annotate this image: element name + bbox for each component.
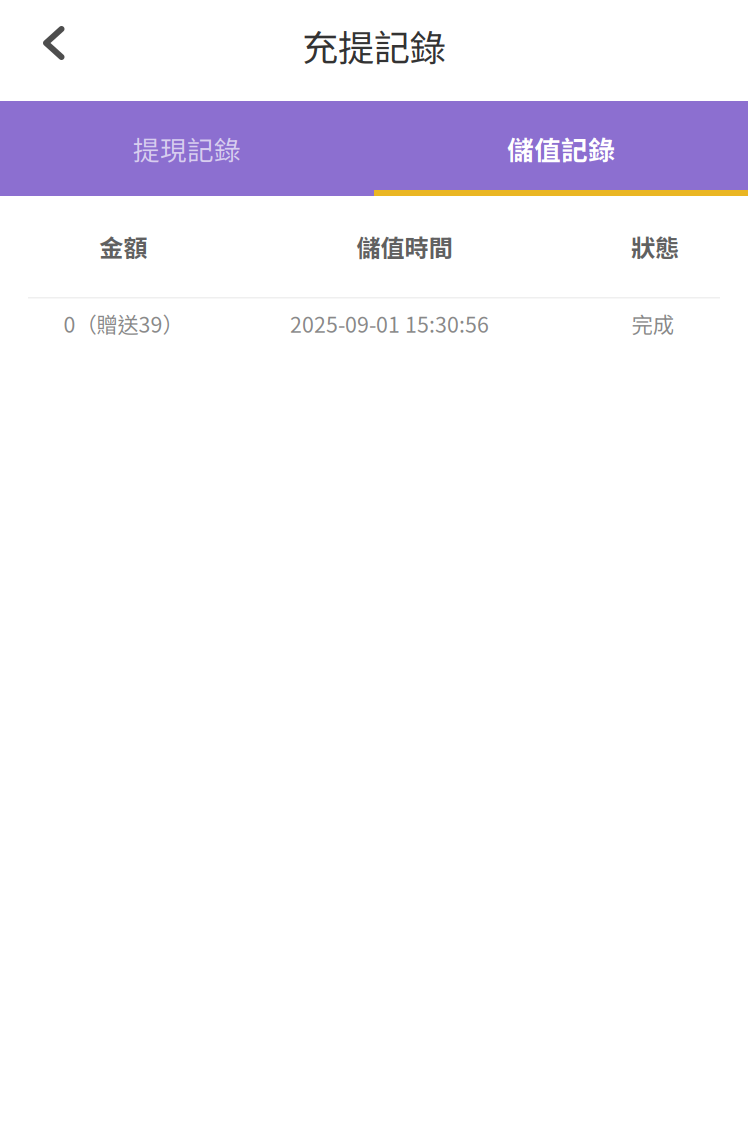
staticText: 狀態 — [631, 229, 679, 264]
button[interactable]: 儲值記錄 — [374, 101, 748, 196]
button[interactable]: 提現記錄 — [0, 101, 374, 196]
button[interactable]: Back — [0, 0, 108, 101]
staticText: 金額 — [99, 229, 147, 264]
staticText: 0（贈送39） — [63, 308, 183, 339]
staticText: 2025-09-01 15:30:56 — [290, 308, 489, 339]
staticText: 提現記錄 — [133, 129, 241, 168]
staticText: 儲值記錄 — [507, 129, 615, 168]
button[interactable]: 0（贈送39） — [0, 298, 748, 354]
staticText: 完成 — [631, 308, 673, 339]
staticText: 充提記錄 — [302, 19, 446, 71]
staticText: 儲值時間 — [356, 229, 452, 264]
